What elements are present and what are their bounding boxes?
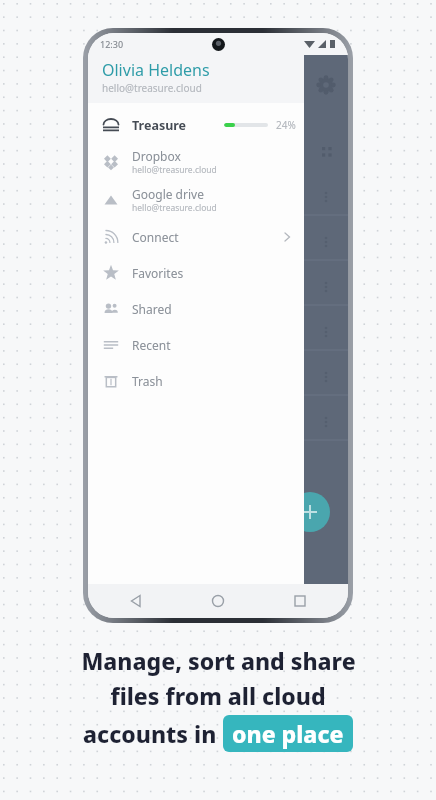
button[interactable]: Back <box>124 589 148 613</box>
staticText: hello@treasure.cloud <box>102 81 202 95</box>
staticText: accounts in <box>83 718 223 749</box>
button[interactable]: Shared <box>88 291 304 327</box>
staticText: Olivia Heldens <box>102 59 210 81</box>
button[interactable]: Connect <box>88 219 304 255</box>
button[interactable]: Add <box>290 492 330 532</box>
button[interactable]: Recents <box>288 589 312 613</box>
staticText: Dropbox <box>132 148 181 164</box>
button[interactable]: Recent <box>88 327 304 363</box>
button[interactable]: Trash <box>88 363 304 399</box>
staticText: hello@treasure.cloud <box>132 164 217 176</box>
button[interactable]: Favorites <box>88 255 304 291</box>
staticText: Favorites <box>132 265 184 281</box>
button[interactable]: Dropbox <box>88 143 304 181</box>
button[interactable]: Google drive <box>88 181 304 219</box>
button[interactable]: Home <box>206 589 230 613</box>
staticText: 12:30 <box>100 38 124 50</box>
staticText: Trash <box>132 373 163 389</box>
staticText: Manage, sort and share <box>81 645 356 676</box>
staticText: Shared <box>132 301 172 317</box>
button[interactable]: Treasure <box>88 107 304 143</box>
staticText: Recent <box>132 337 171 353</box>
staticText: files from all cloud <box>110 680 326 711</box>
staticText: Treasure <box>132 117 187 134</box>
staticText: hello@treasure.cloud <box>132 202 217 214</box>
staticText: Google drive <box>132 186 204 202</box>
staticText: Connect <box>132 229 179 245</box>
staticText: 24% <box>276 118 296 132</box>
staticText: one place <box>232 718 344 749</box>
